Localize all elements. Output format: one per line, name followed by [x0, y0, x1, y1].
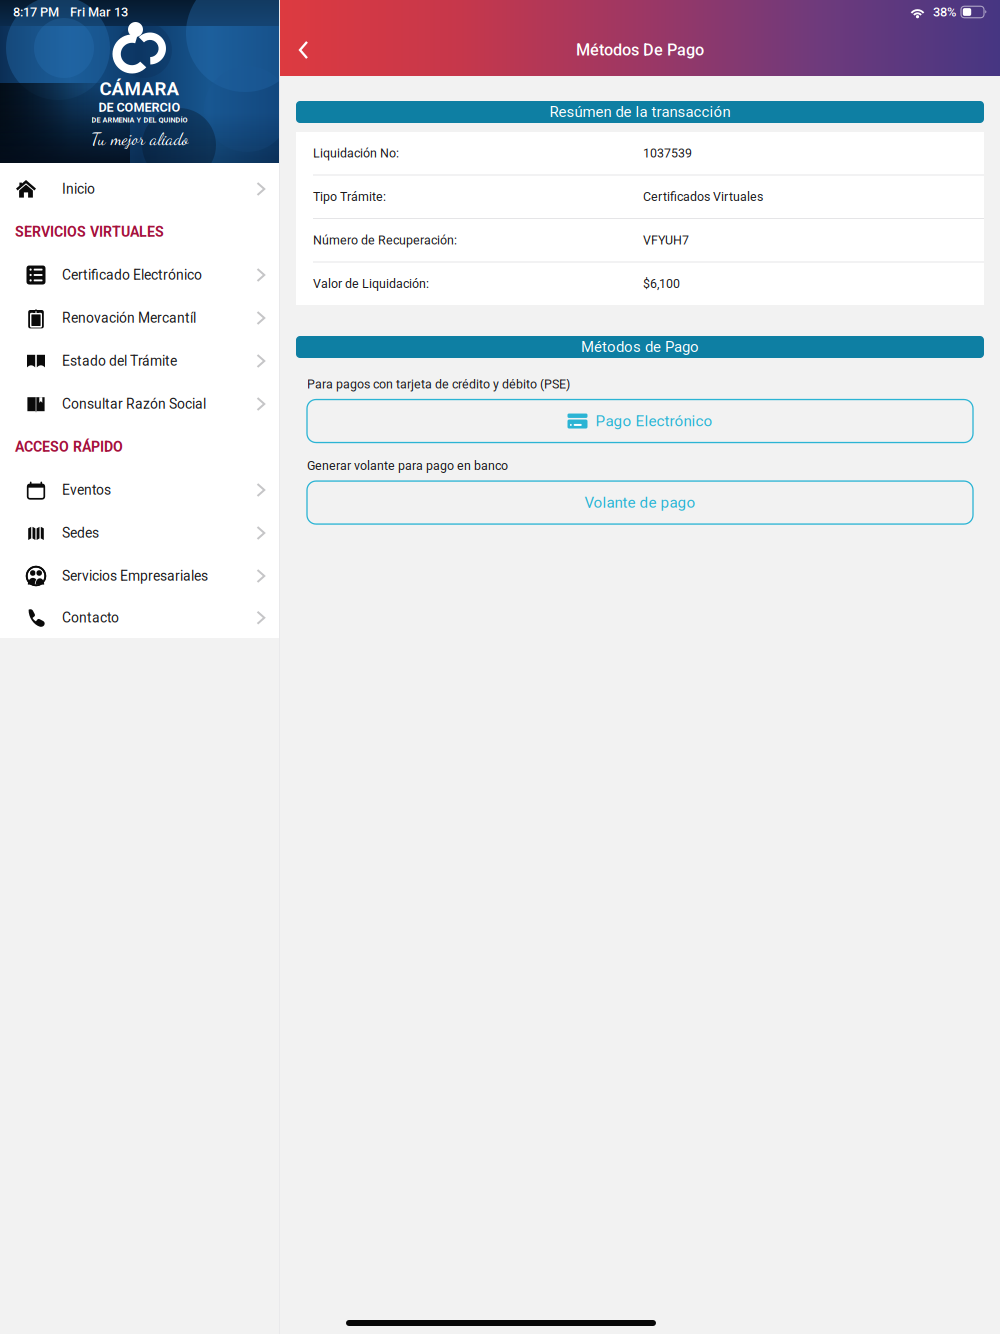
staticText: Tu mejor aliado: [91, 128, 188, 149]
staticText: SERVICIOS VIRTUALES: [15, 224, 164, 240]
staticText: $6,100: [643, 276, 680, 291]
staticText: DE COMERCIO: [98, 100, 180, 115]
button[interactable]: Volante de pago: [307, 481, 973, 524]
staticText: Métodos De Pago: [576, 40, 704, 60]
button[interactable]: Back: [280, 24, 332, 76]
staticText: Número de Recuperación:: [313, 233, 457, 247]
staticText: Generar volante para pago en banco: [307, 458, 508, 473]
button[interactable]: Consultar Razón Social: [0, 382, 279, 425]
staticText: Contacto: [62, 610, 119, 626]
staticText: Sedes: [62, 525, 99, 541]
staticText: Renovación Mercantíl: [62, 310, 196, 326]
button[interactable]: Contacto: [0, 597, 279, 638]
staticText: Pago Electrónico: [595, 412, 712, 430]
staticText: Tipo Trámite:: [313, 189, 386, 204]
staticText: Fri Mar 13: [70, 4, 128, 19]
staticText: Inicio: [62, 181, 95, 197]
button[interactable]: Renovación Mercantíl: [0, 296, 279, 339]
staticText: Para pagos con tarjeta de crédito y débi…: [307, 377, 570, 391]
staticText: Métodos de Pago: [581, 338, 699, 356]
staticText: 38%: [933, 4, 956, 19]
staticText: ACCESO RÁPIDO: [15, 439, 123, 455]
staticText: DE ARMENIA Y DEL QUINDÍO: [91, 116, 187, 124]
staticText: Eventos: [62, 482, 111, 498]
staticText: Servicios Empresariales: [62, 568, 208, 584]
button[interactable]: Inicio: [0, 167, 279, 210]
staticText: Consultar Razón Social: [62, 396, 206, 412]
staticText: Resúmen de la transacción: [549, 103, 730, 121]
staticText: 1037539: [643, 146, 692, 160]
button[interactable]: Servicios Empresariales: [0, 554, 279, 597]
staticText: Volante de pago: [584, 494, 695, 511]
staticText: CÁMARA: [99, 78, 179, 100]
staticText: Certificados Virtuales: [643, 189, 763, 204]
staticText: Certificado Electrónico: [62, 267, 202, 283]
staticText: VFYUH7: [643, 233, 689, 247]
button[interactable]: Eventos: [0, 468, 279, 511]
button[interactable]: Certificado Electrónico: [0, 253, 279, 296]
button[interactable]: Sedes: [0, 511, 279, 554]
button[interactable]: Pago Electrónico: [307, 399, 973, 442]
staticText: 8:17 PM: [13, 4, 59, 19]
staticText: Estado del Trámite: [62, 353, 177, 369]
button[interactable]: Estado del Trámite: [0, 339, 279, 382]
staticText: Valor de Liquidación:: [313, 276, 429, 291]
staticText: Liquidación No:: [313, 146, 399, 160]
